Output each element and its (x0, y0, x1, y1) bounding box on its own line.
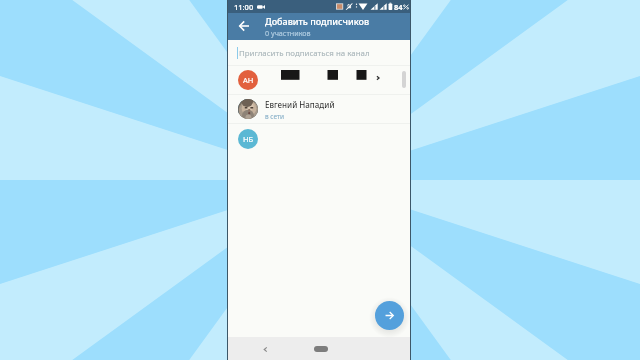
staticText: в сети (265, 112, 285, 121)
staticText: 11:00 (234, 2, 254, 12)
staticText: Добавить подписчиков (265, 15, 370, 27)
staticText: 84 (394, 2, 403, 12)
staticText: 0 участников (265, 28, 311, 38)
staticText: АН (243, 75, 254, 85)
button[interactable]: Home (310, 342, 332, 356)
staticText: Пригласить подписаться на канал (239, 48, 370, 59)
button[interactable]: Евгений Нападий (228, 95, 410, 123)
staticText: НБ (243, 134, 254, 144)
button[interactable]: Back (257, 341, 273, 357)
button[interactable]: АН (228, 66, 410, 94)
button[interactable]: Next (375, 301, 404, 330)
button[interactable]: НБ (228, 124, 410, 154)
staticText: Евгений Нападий (265, 99, 335, 110)
button[interactable]: Back (233, 16, 255, 38)
